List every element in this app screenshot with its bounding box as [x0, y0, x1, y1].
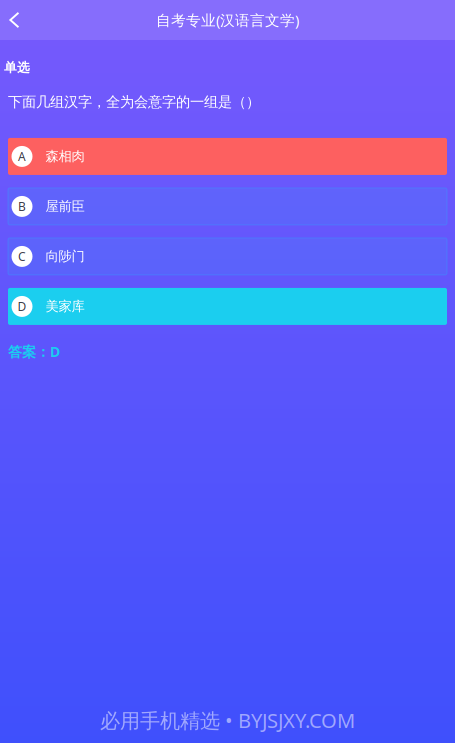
button[interactable]: Back	[0, 0, 29, 40]
staticText: C	[18, 248, 26, 265]
staticText: 向陟门	[45, 248, 84, 265]
staticText: D	[17, 298, 26, 315]
staticText: 必用手机精选 • BYJSJXY.COM	[100, 707, 355, 734]
staticText: 森相肉	[45, 148, 84, 165]
staticText: 屋前臣	[45, 198, 84, 215]
staticText: 单选	[4, 59, 30, 75]
button[interactable]: B	[8, 188, 447, 225]
staticText: 自考专业(汉语言文学)	[156, 10, 299, 30]
staticText: B	[18, 198, 26, 215]
staticText: A	[18, 148, 26, 165]
button[interactable]: C	[8, 238, 447, 275]
staticText: 答案：D	[8, 342, 60, 361]
staticText: 美家库	[45, 298, 84, 315]
staticText: 下面几组汉字，全为会意字的一组是（）	[8, 93, 260, 111]
button[interactable]: A	[8, 138, 447, 175]
button[interactable]: D	[8, 288, 447, 325]
